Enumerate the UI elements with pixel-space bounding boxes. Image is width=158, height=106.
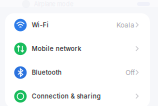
staticText: Wi-Fi — [32, 21, 49, 29]
staticText: Connection & sharing — [32, 92, 101, 100]
staticText: Mobile network — [32, 45, 82, 53]
button[interactable]: Connection & sharing — [5, 84, 150, 106]
staticText: Airplane mode — [34, 0, 73, 8]
staticText: Koala — [116, 21, 134, 29]
staticText: Off — [125, 68, 134, 77]
staticText: Bluetooth — [32, 69, 62, 76]
button[interactable]: Mobile network — [5, 37, 150, 61]
button[interactable]: Wi-Fi — [5, 13, 150, 37]
button[interactable]: Bluetooth — [5, 61, 150, 84]
